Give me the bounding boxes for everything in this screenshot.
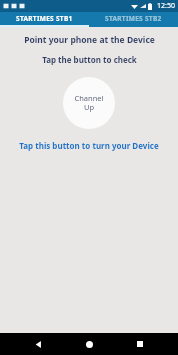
- staticText: STARTIMES STB1: [16, 14, 73, 23]
- staticText: 12:50: [157, 1, 175, 11]
- staticText: STARTIMES STB2: [105, 14, 162, 23]
- button[interactable]: Recent apps: [127, 333, 153, 355]
- staticText: Tap the button to check: [42, 54, 137, 65]
- button[interactable]: STARTIMES STB1: [0, 12, 89, 25]
- button[interactable]: Channel Up: [63, 77, 115, 129]
- button[interactable]: STARTIMES STB2: [89, 12, 178, 25]
- staticText: Point your phone at the Device: [24, 34, 155, 46]
- staticText: Channel Up: [74, 93, 104, 113]
- button[interactable]: Tap this button to turn your Device: [0, 140, 178, 151]
- button[interactable]: Home: [76, 333, 102, 355]
- staticText: Tap this button to turn your Device: [19, 140, 159, 151]
- button[interactable]: Back: [25, 333, 51, 355]
